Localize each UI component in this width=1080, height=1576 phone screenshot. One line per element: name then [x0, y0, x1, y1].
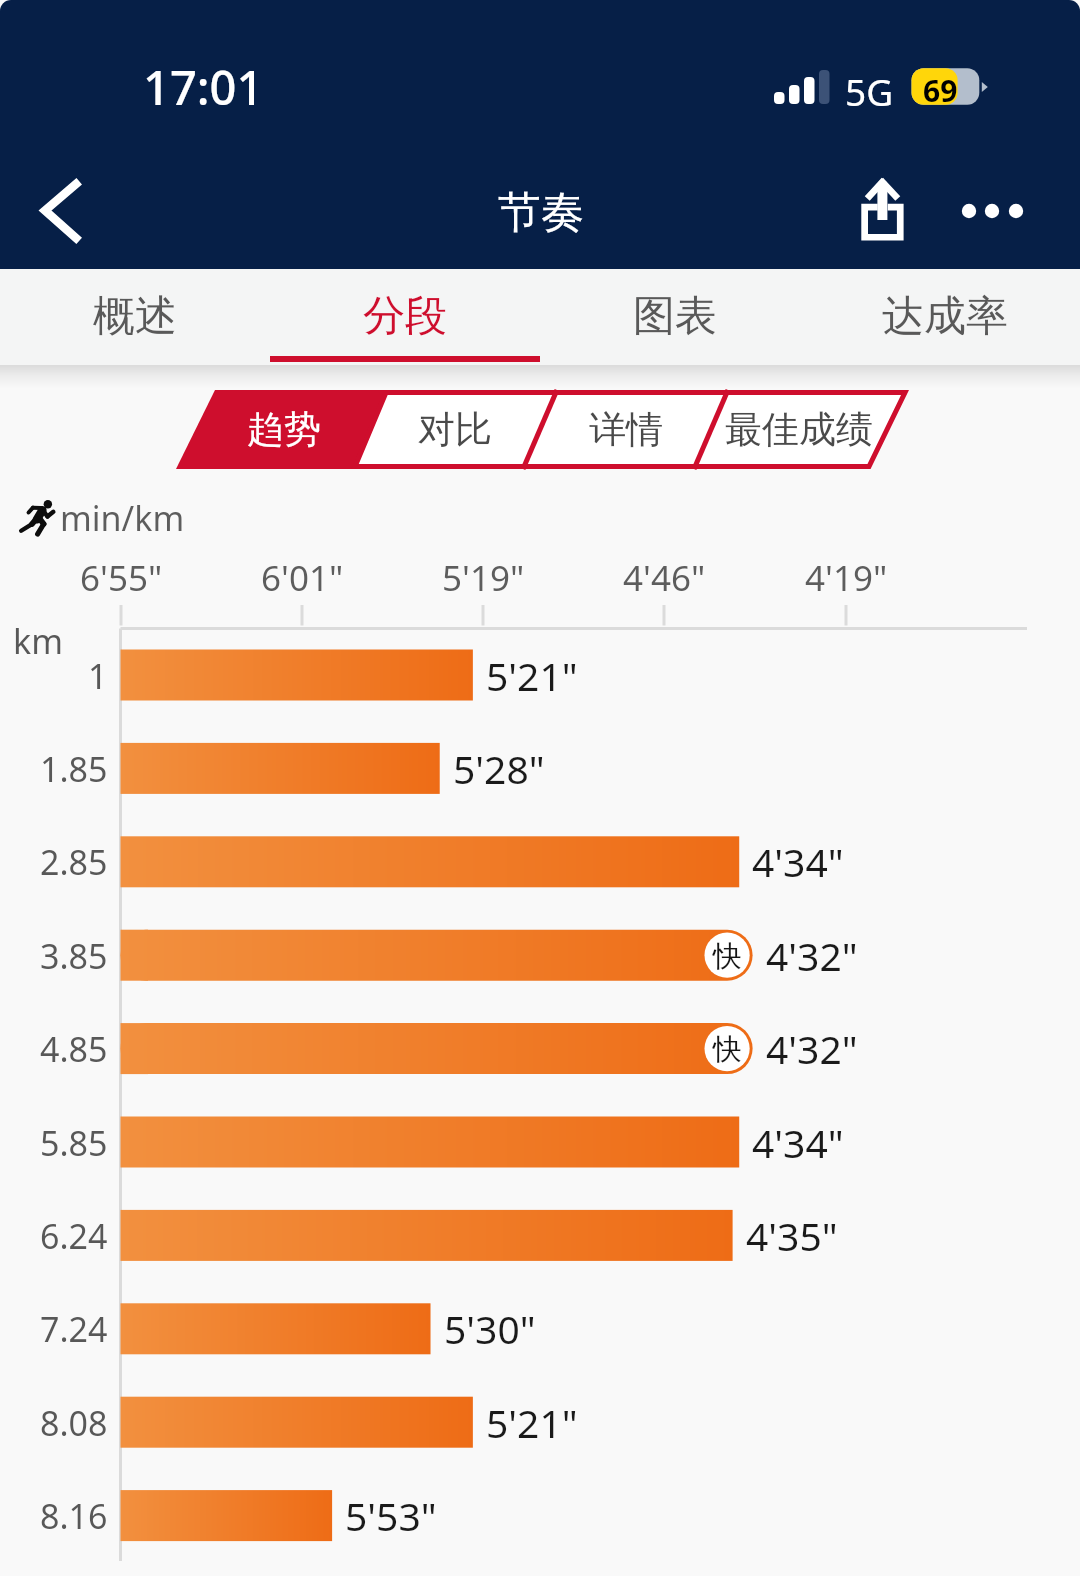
button[interactable]: 图表	[540, 269, 810, 365]
staticText: 4'32"	[766, 929, 858, 980]
staticText: 1	[88, 653, 108, 699]
staticText: 17:01	[143, 55, 264, 119]
staticText: 节奏	[498, 186, 584, 240]
staticText: 4.85	[40, 1026, 108, 1072]
staticText: 1.85	[40, 746, 108, 792]
button[interactable]	[0, 1376, 1080, 1469]
staticText: 6'55"	[80, 554, 163, 602]
button[interactable]: 对比	[355, 390, 555, 469]
staticText: 5'28"	[453, 742, 545, 793]
staticText: 详情	[589, 406, 663, 453]
staticText: 达成率	[882, 290, 1008, 343]
staticText: 6'01"	[261, 554, 344, 602]
staticText: 对比	[418, 406, 492, 453]
staticText: 8.16	[40, 1493, 108, 1539]
staticText: 6.24	[40, 1213, 108, 1259]
staticText: 5'19"	[442, 554, 525, 602]
staticText: 5'21"	[486, 649, 578, 700]
button[interactable]	[0, 722, 1080, 815]
button[interactable]	[0, 1002, 1080, 1095]
staticText: 8.08	[40, 1400, 108, 1446]
button[interactable]: Share	[827, 155, 937, 267]
button[interactable]	[0, 1189, 1080, 1282]
button[interactable]	[0, 815, 1080, 908]
staticText: 图表	[633, 290, 717, 343]
staticText: 4'19"	[805, 554, 888, 602]
staticText: 4'34"	[752, 835, 844, 886]
button[interactable]: More options	[937, 155, 1047, 267]
staticText: 4'34"	[752, 1116, 844, 1167]
button[interactable]	[0, 1096, 1080, 1189]
button[interactable]	[0, 1282, 1080, 1375]
staticText: 5G	[845, 66, 894, 116]
staticText: 5'53"	[345, 1489, 437, 1540]
staticText: 5'21"	[486, 1396, 578, 1447]
button[interactable]: 分段	[270, 269, 540, 365]
staticText: 4'32"	[766, 1022, 858, 1073]
staticText: 69	[923, 70, 958, 111]
staticText: 4'46"	[623, 554, 706, 602]
staticText: 5.85	[40, 1120, 108, 1166]
staticText: 2.85	[40, 839, 108, 885]
staticText: 4'35"	[746, 1209, 838, 1260]
staticText: 分段	[363, 290, 447, 343]
staticText: km	[13, 618, 63, 664]
staticText: 3.85	[40, 933, 108, 979]
staticText: 7.24	[40, 1306, 108, 1352]
staticText: 5'30"	[444, 1302, 536, 1353]
staticText: 快	[713, 1031, 742, 1068]
button[interactable]	[0, 909, 1080, 1002]
button[interactable]: Back	[8, 155, 118, 267]
button[interactable]: 最佳成绩	[699, 390, 899, 469]
button[interactable]: 趋势	[184, 390, 384, 469]
staticText: 最佳成绩	[725, 406, 873, 453]
button[interactable]	[0, 629, 1080, 722]
staticText: 快	[713, 938, 742, 975]
button[interactable]: 详情	[526, 390, 726, 469]
staticText: 趋势	[247, 406, 321, 453]
button[interactable]: 达成率	[810, 269, 1080, 365]
button[interactable]: 概述	[0, 269, 270, 365]
staticText: min/km	[60, 495, 185, 541]
button[interactable]	[0, 1469, 1080, 1562]
staticText: 概述	[93, 290, 177, 343]
